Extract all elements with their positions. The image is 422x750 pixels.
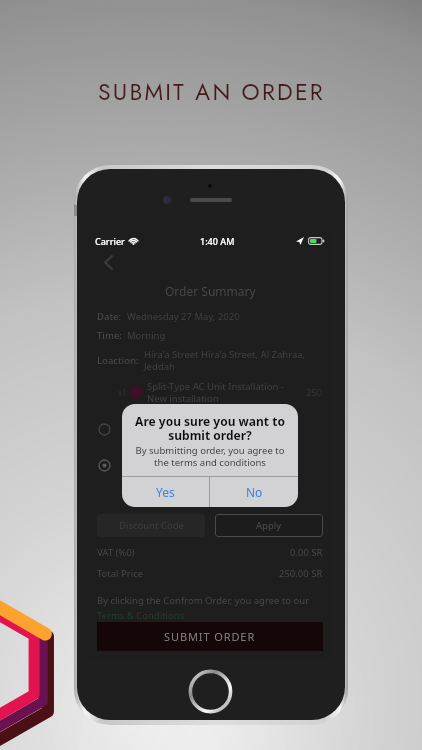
staticText: Order Summary (165, 283, 256, 299)
staticText: Loaction: (97, 354, 139, 367)
staticText: Discount Code (119, 519, 184, 532)
staticText: 250.00 SR (279, 567, 323, 580)
button[interactable]: Back (100, 254, 117, 271)
staticText: Yes (156, 484, 175, 500)
staticText: 1:40 AM (200, 235, 235, 247)
staticText: 250 (306, 386, 323, 399)
staticText: x1 (118, 387, 127, 398)
staticText: Carrier (95, 235, 125, 247)
staticText: By submitting order, you agree to the te… (127, 444, 293, 469)
button[interactable]: Discount Code (97, 514, 205, 537)
staticText: No (246, 484, 263, 500)
staticText: 0.00 SR (290, 546, 323, 559)
button[interactable]: Payment option 1 (98, 423, 111, 436)
staticText: VAT (%0) (97, 546, 135, 559)
other: Home (188, 669, 233, 714)
button[interactable]: Terms & Conditions (97, 609, 185, 622)
staticText: SUBMIT ORDER (164, 629, 256, 644)
staticText: Morning (127, 329, 166, 342)
button[interactable]: Apply (215, 514, 323, 537)
staticText: By clicking the Confrom Order, you agree… (97, 594, 310, 607)
button[interactable]: Payment option 2 (98, 459, 111, 472)
staticText: Date: (97, 310, 122, 323)
button[interactable]: SUBMIT ORDER (97, 622, 323, 651)
staticText: SUBMIT AN ORDER (98, 75, 325, 108)
staticText: Wednesday 27 May, 2020 (127, 310, 240, 323)
button[interactable]: No (210, 477, 298, 507)
staticText: Apply (256, 519, 282, 532)
button[interactable]: Yes (122, 477, 209, 507)
staticText: Are you sure you want to submit order? (125, 413, 295, 444)
staticText: Total Price (97, 567, 144, 580)
staticText: Time: (97, 329, 122, 342)
staticText: Split-Type AC Unit Installation - New in… (147, 380, 306, 405)
staticText: Hira'a Street Hira'a Street, Al Zahraa, … (144, 348, 306, 373)
